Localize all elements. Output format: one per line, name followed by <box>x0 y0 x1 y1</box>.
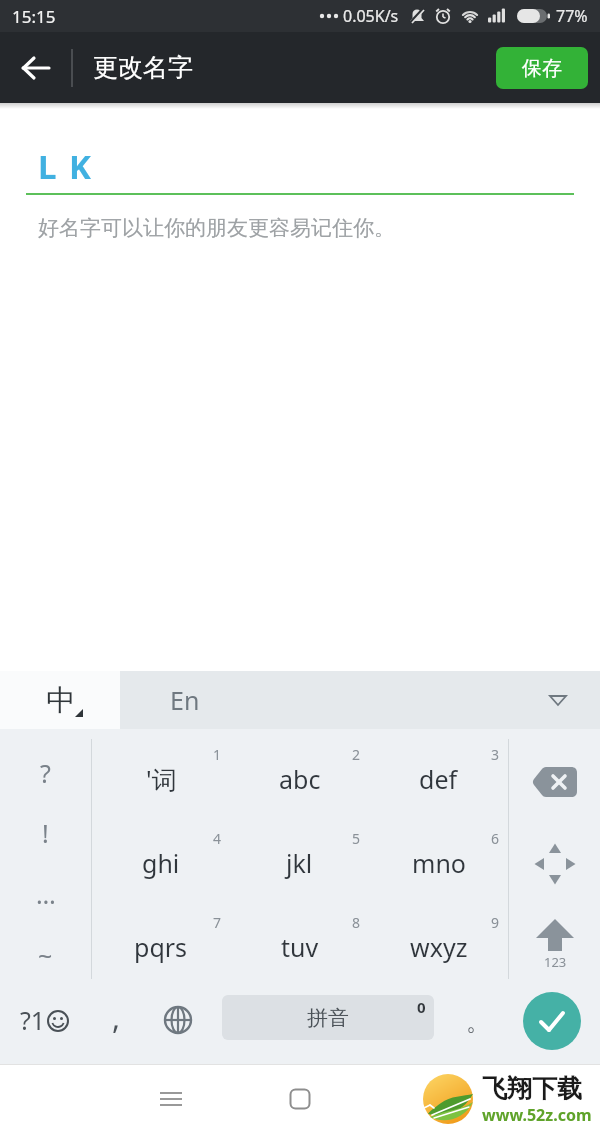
button[interactable]: 4 <box>92 821 230 905</box>
staticText: 5 <box>352 829 361 848</box>
button[interactable]: , <box>112 997 121 1038</box>
staticText: 15:15 <box>12 5 56 28</box>
staticText: 3 <box>491 745 500 764</box>
button[interactable]: 3 <box>369 737 508 821</box>
staticText: 7 <box>213 913 222 932</box>
button[interactable]: 7 <box>92 905 230 989</box>
button[interactable] <box>289 1088 311 1110</box>
button[interactable]: ? <box>0 743 91 803</box>
button[interactable]: 9 <box>369 905 508 989</box>
button[interactable] <box>548 690 568 710</box>
staticText: ?1 <box>20 1003 46 1037</box>
button[interactable]: 5 <box>230 821 369 905</box>
staticText: abc <box>279 762 321 796</box>
staticText: jkl <box>286 846 313 880</box>
staticText: 飞翔下载 <box>482 1073 582 1104</box>
button[interactable]: 拼音 <box>222 995 434 1040</box>
staticText: 9 <box>491 913 500 932</box>
button[interactable] <box>509 823 600 904</box>
button[interactable]: 中 <box>0 671 120 729</box>
staticText: wxyz <box>410 930 468 964</box>
staticText: mno <box>412 846 466 880</box>
staticText: www.52z.com <box>482 1104 592 1126</box>
button[interactable]: En <box>170 683 200 717</box>
staticText: 更改名字 <box>93 52 193 83</box>
staticText: 123 <box>544 953 567 971</box>
button[interactable] <box>509 741 600 823</box>
staticText: L K <box>38 144 93 189</box>
staticText: 6 <box>491 829 500 848</box>
button[interactable]: 6 <box>369 821 508 905</box>
button[interactable]: 保存 <box>496 47 588 89</box>
staticText: 0.05K/s <box>343 5 399 27</box>
button[interactable]: 1 <box>92 737 230 821</box>
button[interactable]: ! <box>0 803 91 863</box>
staticText: ? <box>40 756 51 790</box>
staticText: 0 <box>417 997 426 1017</box>
button[interactable] <box>159 1087 183 1111</box>
staticText: 保存 <box>522 56 562 81</box>
staticText: 8 <box>352 913 361 932</box>
staticText: def <box>419 762 458 796</box>
staticText: ~ <box>38 938 53 972</box>
staticText: ghi <box>142 846 180 880</box>
button[interactable] <box>161 1003 195 1037</box>
button[interactable] <box>523 992 581 1050</box>
button[interactable]: 8 <box>230 905 369 989</box>
button[interactable]: ~ <box>0 924 91 985</box>
button[interactable] <box>0 32 71 103</box>
staticText: 拼音 <box>307 1005 349 1031</box>
staticText: 好名字可以让你的朋友更容易记住你。 <box>38 215 395 241</box>
button[interactable]: 2 <box>230 737 369 821</box>
button[interactable]: ?1 <box>20 1003 70 1037</box>
staticText: … <box>36 877 56 911</box>
staticText: 77% <box>556 5 588 27</box>
button[interactable]: 。 <box>466 1007 490 1037</box>
staticText: 中 <box>46 682 75 719</box>
button[interactable]: … <box>0 863 91 924</box>
staticText: 2 <box>352 745 361 764</box>
staticText: tuv <box>281 930 319 964</box>
staticText: 1 <box>213 745 222 764</box>
staticText: pqrs <box>134 930 188 964</box>
staticText: ! <box>42 816 49 850</box>
staticText: 4 <box>213 829 222 848</box>
button[interactable]: 123 <box>509 904 600 985</box>
staticText: '词 <box>146 762 177 796</box>
